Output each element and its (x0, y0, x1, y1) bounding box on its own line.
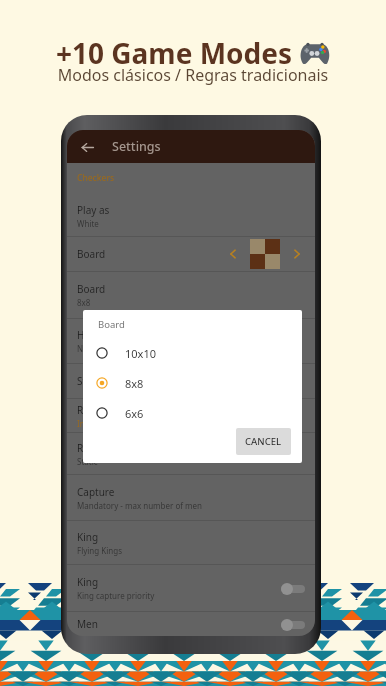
staticText: King (77, 575, 99, 589)
button[interactable]: Rules (67, 399, 315, 432)
staticText: 10x10 (125, 346, 156, 361)
staticText: None (77, 343, 98, 354)
button[interactable]: King (67, 521, 315, 564)
staticText: 6x6 (125, 406, 144, 421)
staticText: King (77, 530, 99, 544)
staticText: Mandatory - max number of men (77, 500, 203, 511)
button[interactable]: Rotate board (67, 433, 315, 474)
staticText: Board (77, 247, 225, 261)
staticText: CANCEL (245, 435, 282, 448)
button[interactable]: Play as (67, 196, 315, 236)
staticText: Flying Kings (77, 545, 123, 556)
staticText: White (77, 218, 99, 229)
staticText: Play as (77, 203, 110, 217)
staticText: Static (77, 456, 98, 467)
staticText: Rotate board (77, 441, 139, 455)
button[interactable]: Start (67, 364, 315, 398)
staticText: Board (98, 318, 125, 331)
staticText: 8x8 (77, 297, 91, 308)
button[interactable]: Next board (289, 246, 305, 262)
button[interactable]: 10x10 (83, 338, 302, 368)
staticText: Rules (77, 403, 103, 417)
staticText: Modos clásicos / Regras tradicionais (0, 64, 386, 86)
staticText: Settings (112, 138, 161, 155)
staticText: Men (77, 617, 98, 631)
button[interactable]: Previous board (225, 246, 241, 262)
button[interactable]: Board (67, 237, 315, 271)
staticText: Handicap (77, 328, 122, 342)
staticText: King capture priority (77, 590, 155, 601)
button[interactable]: CANCEL (236, 428, 291, 455)
button[interactable]: King (67, 565, 315, 611)
staticText: International (77, 418, 127, 429)
button[interactable]: Back (77, 137, 97, 157)
staticText: Board (77, 282, 106, 296)
button[interactable]: 8x8 (83, 368, 302, 398)
button[interactable]: 6x6 (83, 398, 302, 428)
button[interactable]: Men (67, 612, 315, 636)
staticText: +10 Game Modes (56, 34, 293, 72)
button[interactable]: Handicap (67, 319, 315, 363)
staticText: 8x8 (125, 376, 144, 391)
staticText: Capture (77, 485, 115, 499)
button[interactable]: Capture (67, 475, 315, 520)
staticText: Start (77, 374, 100, 388)
staticText: Checkers (77, 172, 115, 184)
button[interactable]: Board (67, 272, 315, 318)
